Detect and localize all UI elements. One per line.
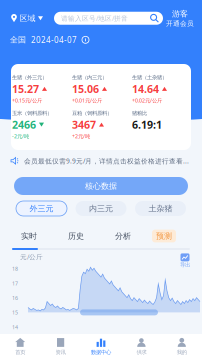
staticText: 游客 (172, 9, 188, 19)
staticText: +0.02元/公斤 (132, 97, 162, 104)
staticText: 16 (12, 294, 18, 301)
staticText: 6.19:1 (132, 118, 162, 132)
staticText: 15.27 (12, 82, 39, 96)
staticText: 2024-04-07 (31, 34, 77, 45)
button[interactable]: 会员最低仅需9.9元/月，详情点击权益价格进行查看... (0, 152, 202, 170)
button[interactable]: 历史 (64, 230, 88, 242)
staticText: 生猪（外三元） (12, 74, 47, 81)
staticText: 全国 (10, 35, 26, 45)
staticText: 分析 (115, 231, 131, 241)
staticText: 玉米（饲料原料） (12, 110, 52, 117)
staticText: 请输入区号/地区/拼音 (61, 14, 128, 23)
staticText: 15 (12, 309, 18, 316)
staticText: 数据中心 (91, 349, 111, 356)
staticText: 我的 (177, 349, 187, 356)
staticText: 外三元 (29, 204, 53, 213)
button[interactable]: 实时 (17, 230, 41, 242)
staticText: 14.64 (132, 82, 159, 96)
staticText: 核心数据 (85, 181, 117, 191)
button[interactable]: 内三元 (75, 201, 126, 216)
staticText: 元/公斤 (20, 252, 43, 261)
button[interactable]: 资讯 (40, 337, 81, 356)
staticText: 17 (12, 280, 18, 287)
button[interactable]: 预测 (152, 230, 176, 242)
button[interactable]: 请输入区号/地区/拼音 (54, 12, 163, 25)
staticText: 15.06 (72, 82, 99, 96)
button[interactable]: 导出 (180, 253, 190, 268)
staticText: +2元/吨 (72, 133, 90, 140)
staticText: 18 (12, 265, 18, 272)
staticText: 14 (12, 324, 18, 331)
button[interactable]: 说明 (82, 36, 89, 43)
button[interactable]: 土杂猪 (135, 201, 186, 216)
staticText: 生猪（内三元） (72, 74, 107, 81)
staticText: 豆粕（饲料原料） (72, 110, 112, 117)
button[interactable]: 数据中心 (81, 337, 121, 356)
staticText: +0.15元/公斤 (12, 97, 42, 104)
button[interactable]: 外三元 (16, 201, 67, 216)
staticText: 供求 (136, 349, 146, 356)
button[interactable]: 我的 (162, 337, 202, 356)
staticText: 3467 (72, 118, 96, 132)
staticText: 土杂猪 (148, 204, 172, 213)
staticText: 历史 (68, 231, 84, 241)
staticText: 导出 (180, 261, 190, 268)
staticText: 开通会员 (166, 19, 194, 27)
staticText: 实时 (21, 231, 37, 241)
staticText: -2元/吨 (12, 133, 29, 140)
staticText: 生猪（土杂猪） (132, 74, 167, 81)
staticText: 首页 (15, 349, 25, 356)
staticText: 预测 (156, 231, 172, 241)
staticText: +0.01元/公斤 (72, 97, 102, 104)
staticText: 会员最低仅需9.9元/月，详情点击权益价格进行查看... (24, 157, 189, 165)
button[interactable]: 分析 (111, 230, 135, 242)
staticText: 资讯 (56, 349, 66, 356)
button[interactable]: 游客 (165, 9, 195, 27)
button[interactable]: 首页 (0, 337, 40, 356)
button[interactable]: 区域 (7, 10, 47, 26)
staticText: 猪粮比 (132, 110, 147, 117)
button[interactable]: 供求 (121, 337, 162, 356)
staticText: 内三元 (89, 204, 113, 213)
staticText: 区域 (19, 13, 35, 23)
staticText: 2466 (12, 118, 36, 132)
